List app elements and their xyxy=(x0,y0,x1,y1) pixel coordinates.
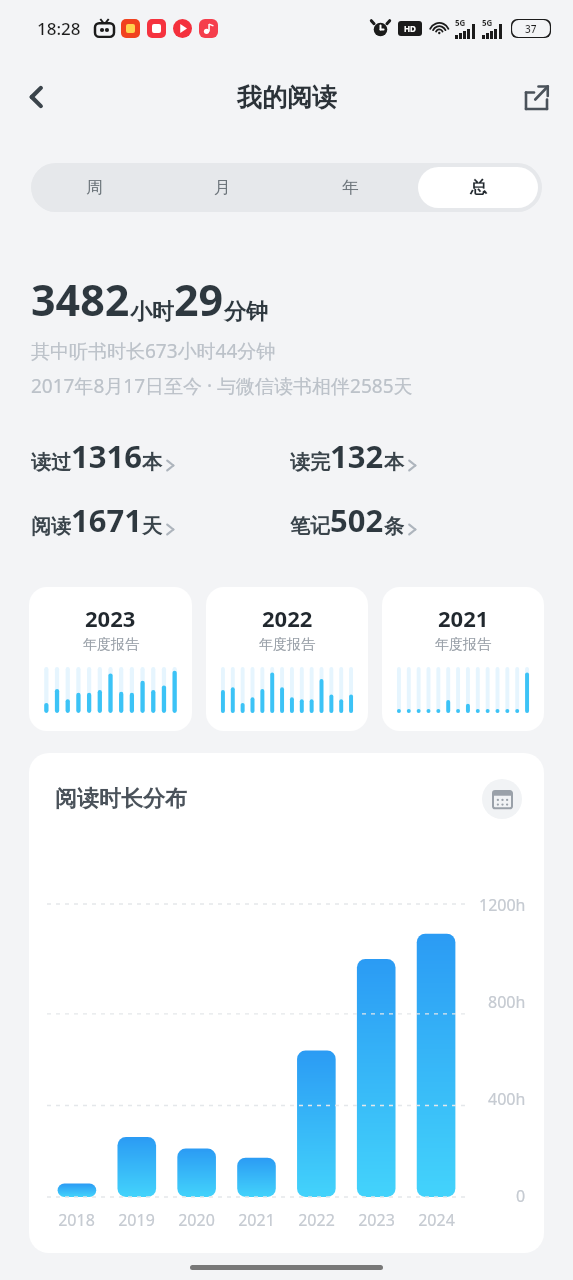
staticText: 2019 xyxy=(118,1209,155,1231)
staticText: 2022 xyxy=(298,1209,335,1231)
staticText: 本 xyxy=(142,450,162,475)
staticText: 周 xyxy=(86,177,103,198)
staticText: 29 xyxy=(174,270,224,329)
staticText: 天 xyxy=(142,514,162,539)
staticText: 阅读 xyxy=(31,514,71,539)
staticText: 2024 xyxy=(418,1209,455,1231)
staticText: 2021 xyxy=(238,1209,275,1231)
staticText: HD xyxy=(404,23,416,34)
button[interactable]: 2021 xyxy=(382,587,544,731)
button[interactable]: 笔记 xyxy=(290,499,549,541)
staticText: 2022 xyxy=(262,603,313,633)
staticText: 读完 xyxy=(290,450,330,475)
button[interactable]: 2023 xyxy=(29,587,192,731)
staticText: 0 xyxy=(516,1185,526,1207)
button[interactable]: 年 xyxy=(290,167,410,208)
staticText: 2023 xyxy=(358,1209,395,1231)
staticText: 年度报告 xyxy=(435,636,491,654)
button[interactable]: 读完 xyxy=(290,435,549,477)
staticText: 2018 xyxy=(58,1209,95,1231)
button[interactable]: 读过 xyxy=(31,435,290,477)
staticText: 18:28 xyxy=(37,17,81,40)
staticText: 年 xyxy=(342,177,359,198)
staticText: 5G xyxy=(482,17,493,28)
staticText: 总 xyxy=(470,177,487,198)
button[interactable]: 阅读 xyxy=(31,499,290,541)
staticText: 2020 xyxy=(178,1209,215,1231)
staticText: 132 xyxy=(330,435,384,477)
staticText: 400h xyxy=(488,1088,526,1110)
staticText: 2021 xyxy=(438,603,489,633)
staticText: 笔记 xyxy=(290,514,330,539)
staticText: 小时 xyxy=(130,298,174,326)
button[interactable]: 月 xyxy=(162,167,282,208)
staticText: 本 xyxy=(384,450,404,475)
staticText: 我的阅读 xyxy=(237,82,337,113)
staticText: 2023 xyxy=(85,603,136,633)
staticText: 1671 xyxy=(71,499,142,541)
button[interactable]: Share xyxy=(513,74,559,120)
staticText: 年度报告 xyxy=(259,636,315,654)
staticText: 条 xyxy=(384,514,404,539)
staticText: 3482 xyxy=(31,270,130,329)
staticText: 1316 xyxy=(71,435,142,477)
staticText: 37 xyxy=(525,22,537,36)
staticText: 读过 xyxy=(31,450,71,475)
staticText: 1200h xyxy=(479,894,526,916)
staticText: 阅读时长分布 xyxy=(55,785,187,813)
staticText: 其中听书时长673小时44分钟 xyxy=(31,338,276,364)
button[interactable]: 2022 xyxy=(206,587,368,731)
button[interactable]: 总 xyxy=(418,167,538,208)
staticText: 502 xyxy=(330,499,384,541)
button[interactable]: Back xyxy=(14,74,60,120)
staticText: 分钟 xyxy=(224,298,268,326)
staticText: 2017年8月17日至今 · 与微信读书相伴2585天 xyxy=(31,373,413,399)
staticText: 年度报告 xyxy=(83,636,139,654)
button[interactable]: Choose date xyxy=(482,779,522,819)
staticText: 800h xyxy=(488,991,526,1013)
staticText: 5G xyxy=(455,17,466,28)
button[interactable]: 周 xyxy=(35,167,154,208)
staticText: 月 xyxy=(214,177,231,198)
